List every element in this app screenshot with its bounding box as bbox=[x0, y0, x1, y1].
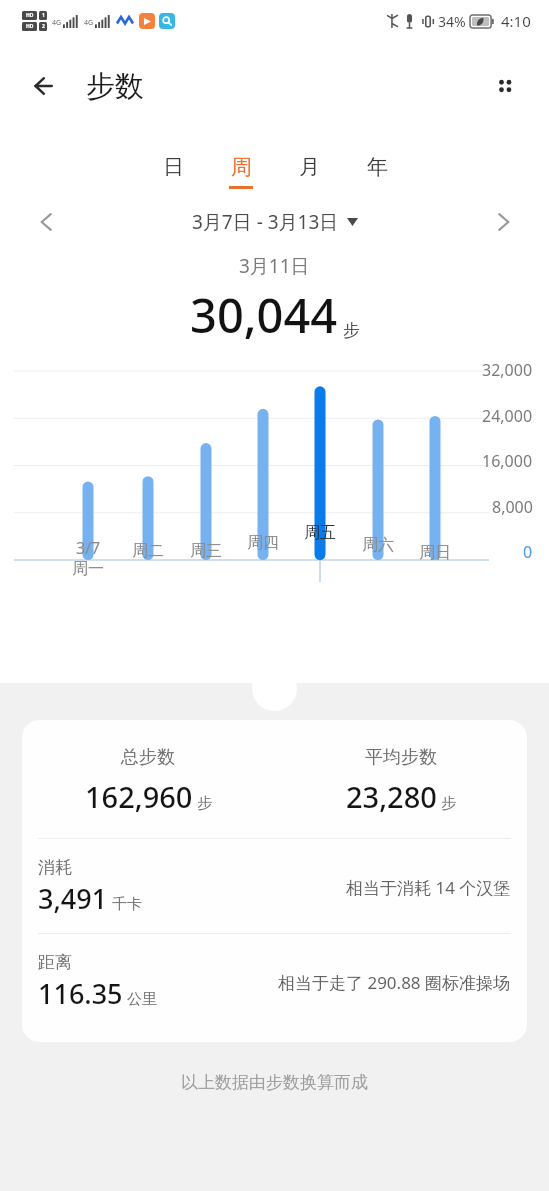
staticText: 2 bbox=[42, 23, 45, 30]
staticText: 0 bbox=[523, 541, 533, 563]
staticText: 周五 bbox=[304, 523, 336, 543]
staticText: 24,000 bbox=[482, 405, 533, 427]
staticText: 4:10 bbox=[501, 11, 531, 31]
staticText: 日 bbox=[163, 154, 184, 180]
button[interactable]: 消耗 bbox=[22, 839, 527, 933]
button[interactable]: 3月7日 - 3月13日 bbox=[192, 209, 358, 235]
staticText: 16,000 bbox=[482, 450, 533, 472]
staticText: 相当于消耗 14 个汉堡 bbox=[346, 876, 511, 899]
staticText: 34% bbox=[438, 12, 466, 31]
staticText: 116.35 bbox=[38, 975, 123, 1012]
staticText: 以上数据由步数换算而成 bbox=[0, 1072, 549, 1093]
staticText: 162,960 bbox=[85, 777, 193, 816]
staticText: 32,000 bbox=[482, 359, 533, 381]
staticText: 3,491 bbox=[38, 880, 108, 917]
staticText: 4G bbox=[84, 18, 94, 28]
staticText: 3月11日 bbox=[239, 253, 310, 279]
button[interactable]: 月 bbox=[275, 152, 343, 191]
staticText: 千卡 bbox=[112, 895, 142, 914]
button[interactable]: 平均步数 bbox=[274, 746, 527, 816]
staticText: 周二 bbox=[132, 541, 164, 561]
staticText: 步数 bbox=[86, 68, 144, 105]
staticText: 3月7日 - 3月13日 bbox=[192, 209, 339, 235]
button[interactable]: More options bbox=[481, 62, 529, 110]
staticText: 相当于走了 290.88 圈标准操场 bbox=[278, 971, 511, 994]
staticText: 23,280 bbox=[346, 777, 437, 816]
staticText: 4G bbox=[52, 18, 62, 28]
staticText: 年 bbox=[367, 154, 388, 180]
staticText: 月 bbox=[299, 154, 320, 180]
staticText: 30,044 bbox=[190, 283, 338, 347]
button[interactable]: 日 bbox=[139, 152, 207, 191]
staticText: 步 bbox=[441, 794, 456, 813]
staticText: 消耗 bbox=[38, 857, 72, 878]
staticText: 周日 bbox=[419, 543, 451, 563]
staticText: 距离 bbox=[38, 952, 72, 973]
button[interactable]: 总步数 bbox=[22, 746, 274, 816]
staticText: 公里 bbox=[127, 990, 157, 1009]
staticText: 周四 bbox=[247, 533, 279, 553]
staticText: 周六 bbox=[362, 535, 394, 555]
staticText: HD bbox=[26, 23, 34, 30]
staticText: 步 bbox=[343, 320, 360, 341]
staticText: HD bbox=[26, 12, 34, 19]
staticText: 周 bbox=[231, 154, 252, 180]
button[interactable]: 距离 bbox=[22, 934, 527, 1028]
button[interactable]: 年 bbox=[343, 152, 411, 191]
staticText: 周三 bbox=[190, 541, 222, 561]
staticText: 3/7 bbox=[76, 537, 101, 559]
button[interactable]: Back bbox=[22, 62, 70, 110]
staticText: 步 bbox=[197, 794, 212, 813]
staticText: 8,000 bbox=[492, 496, 533, 518]
button[interactable]: 周 bbox=[207, 152, 275, 191]
button[interactable]: Next week bbox=[481, 200, 525, 244]
staticText: 周一 bbox=[72, 559, 104, 579]
staticText: 平均步数 bbox=[365, 746, 437, 769]
staticText: 总步数 bbox=[121, 746, 175, 769]
staticText: 1 bbox=[42, 12, 45, 19]
button[interactable]: Previous week bbox=[24, 200, 68, 244]
